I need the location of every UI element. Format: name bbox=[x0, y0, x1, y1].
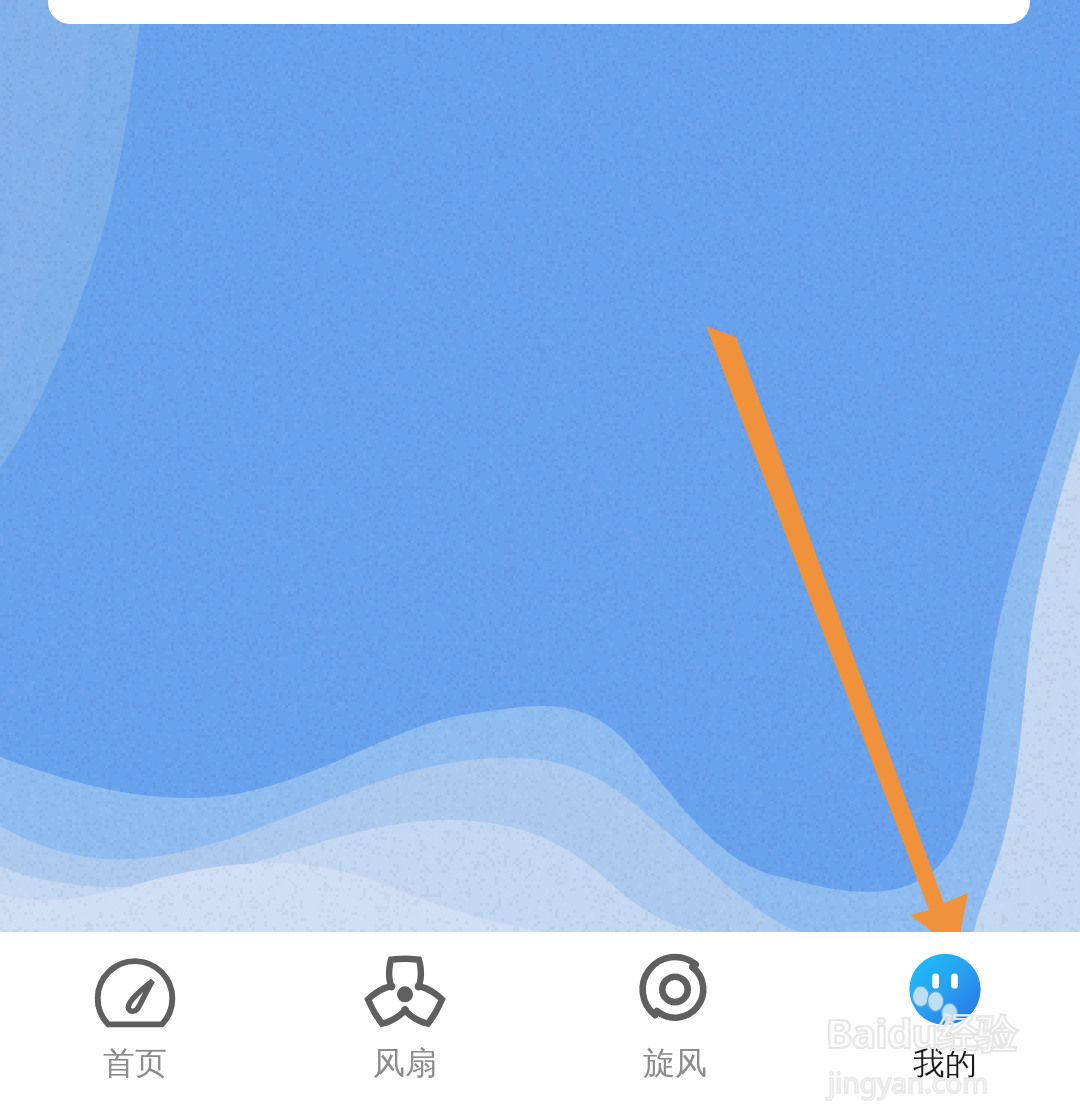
staticText: jingyan.com bbox=[828, 1063, 989, 1101]
button[interactable]: Profile bbox=[810, 932, 1080, 1083]
staticText: 我的 bbox=[913, 1043, 977, 1083]
other: Home bbox=[94, 948, 176, 1030]
button[interactable]: Home bbox=[0, 932, 270, 1083]
staticText: Baidu经验 bbox=[826, 1005, 1017, 1060]
other: Profile bbox=[904, 948, 986, 1030]
button[interactable]: Cyclone bbox=[540, 932, 810, 1083]
other: Fan bbox=[364, 948, 446, 1030]
other: Cyclone bbox=[634, 948, 716, 1030]
button[interactable]: Fan bbox=[270, 932, 540, 1083]
staticText: 旋风 bbox=[643, 1043, 707, 1083]
staticText: 风扇 bbox=[373, 1043, 437, 1083]
staticText: 首页 bbox=[103, 1043, 167, 1083]
